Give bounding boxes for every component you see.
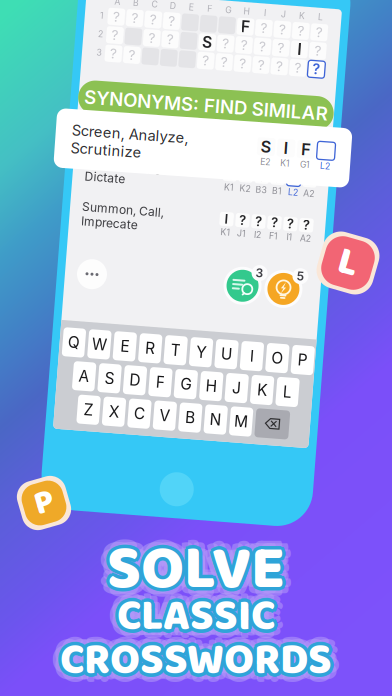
- staticText: Screen, Analyze, Scrutinize: [72, 130, 189, 166]
- staticText: A: [89, 375, 100, 394]
- staticText: CROSSWORDS: [60, 623, 332, 692]
- staticText: ?: [151, 15, 158, 32]
- staticText: 5: [299, 261, 307, 275]
- staticText: ?: [262, 34, 269, 50]
- staticText: CLASSIC: [108, 583, 266, 651]
- staticText: CLASSIC: [113, 583, 271, 651]
- staticText: CROSSWORDS: [54, 633, 326, 696]
- staticText: R: [154, 342, 164, 361]
- staticText: G: [207, 3, 213, 13]
- staticText: SOLVE: [107, 512, 285, 610]
- staticText: ?: [244, 34, 251, 50]
- staticText: CLASSIC: [123, 589, 281, 657]
- staticText: U: [230, 342, 241, 361]
- staticText: E: [129, 342, 138, 361]
- staticText: Z: [97, 408, 107, 427]
- staticText: ?: [96, 52, 103, 69]
- staticText: SOLVE: [101, 515, 279, 613]
- staticText: K: [268, 375, 278, 394]
- button[interactable]: Hint: [268, 261, 312, 303]
- staticText: CLASSIC: [123, 577, 281, 645]
- staticText: CROSSWORDS: [63, 624, 335, 693]
- staticText: H: [226, 3, 232, 13]
- staticText: F: [189, 3, 194, 13]
- staticText: P: [34, 476, 53, 530]
- staticText: Prompt, Suggest, Dictate: [80, 163, 176, 192]
- staticText: SOLVE: [113, 527, 291, 625]
- staticText: SOLVE: [110, 523, 288, 622]
- staticText: CROSSWORDS: [60, 630, 332, 696]
- staticText: CLASSIC: [111, 589, 269, 657]
- staticText: CLASSIC: [114, 585, 272, 654]
- staticText: I: [282, 33, 286, 51]
- staticText: ?: [244, 52, 251, 69]
- staticText: K1: [220, 180, 230, 190]
- staticText: I: [259, 342, 263, 361]
- staticText: SOLVE: [103, 521, 281, 619]
- staticText: ?: [225, 34, 232, 50]
- staticText: I: [223, 209, 227, 224]
- staticText: L2: [322, 152, 332, 163]
- staticText: S: [187, 33, 197, 51]
- staticText: SOLVE: [98, 521, 276, 619]
- staticText: Summon, Call, Imprecate: [80, 208, 162, 237]
- staticText: ?: [299, 52, 307, 69]
- staticText: ?: [188, 52, 195, 69]
- staticText: V: [173, 408, 184, 427]
- staticText: ?: [299, 15, 306, 32]
- staticText: K: [281, 3, 287, 13]
- staticText: [84, 3, 86, 13]
- staticText: ?: [262, 15, 269, 32]
- staticText: CLASSIC: [117, 583, 275, 651]
- staticText: B1: [268, 180, 278, 190]
- staticText: P: [307, 342, 317, 361]
- staticText: C: [133, 3, 139, 13]
- staticText: I: [284, 132, 289, 152]
- staticText: J1: [236, 225, 245, 235]
- button[interactable]: More: [80, 267, 110, 297]
- staticText: I: [246, 3, 248, 13]
- staticText: ?: [281, 52, 288, 69]
- staticText: ?: [237, 209, 244, 224]
- staticText: CLASSIC: [114, 580, 272, 649]
- staticText: F1: [268, 225, 277, 235]
- staticText: SOLVE: [107, 517, 285, 616]
- staticText: W: [100, 342, 115, 361]
- staticText: B: [115, 3, 121, 13]
- staticText: CROSSWORDS: [57, 624, 329, 693]
- staticText: CROSSWORDS: [51, 627, 323, 695]
- staticText: A: [96, 3, 102, 13]
- staticText: K1: [282, 152, 292, 163]
- staticText: F: [224, 14, 233, 33]
- staticText: K2: [235, 180, 246, 190]
- staticText: A2: [299, 225, 310, 235]
- staticText: ?: [285, 209, 292, 224]
- staticText: H: [217, 375, 228, 394]
- staticText: CROSSWORDS: [56, 627, 328, 695]
- staticText: A2: [299, 180, 310, 190]
- staticText: SOLVE: [107, 529, 285, 628]
- staticText: F: [302, 132, 312, 152]
- button[interactable]: Word list: [224, 261, 268, 303]
- staticText: T: [179, 342, 189, 361]
- staticText: ?: [262, 52, 269, 69]
- staticText: L: [338, 232, 358, 294]
- staticText: CLASSIC: [117, 586, 275, 655]
- staticText: CROSSWORDS: [60, 618, 332, 687]
- staticText: K1: [220, 225, 230, 235]
- staticText: S: [261, 132, 272, 152]
- staticText: Q: [76, 342, 88, 361]
- staticText: ?: [133, 34, 140, 50]
- staticText: CLASSIC: [111, 577, 269, 645]
- staticText: X: [122, 408, 132, 427]
- staticText: ?: [114, 52, 121, 69]
- staticText: ?: [133, 15, 140, 32]
- staticText: ?: [225, 52, 232, 69]
- staticText: ?: [253, 209, 260, 224]
- staticText: 2: [82, 37, 87, 47]
- staticText: SOLVE: [111, 521, 289, 619]
- staticText: E: [171, 3, 176, 13]
- staticText: ?: [281, 15, 288, 32]
